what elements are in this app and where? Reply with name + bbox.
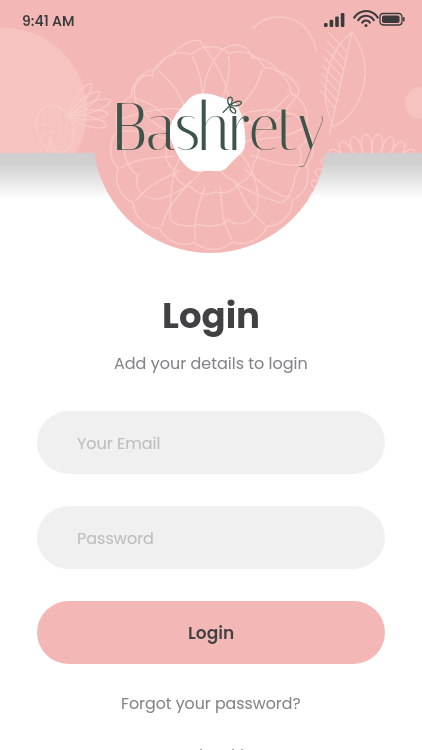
button[interactable]: Forgot your password? (113, 688, 309, 718)
staticText: Login With (173, 744, 250, 750)
button[interactable]: Login (37, 601, 385, 664)
staticText: Login (162, 291, 261, 341)
staticText: Your Email (77, 432, 161, 454)
other: Status icons (324, 10, 400, 28)
staticText: Login (188, 621, 235, 645)
staticText: Forgot your password? (121, 692, 301, 714)
button[interactable]: Password (37, 506, 385, 569)
staticText: Add your details to login (114, 352, 308, 374)
staticText: Password (77, 527, 154, 549)
staticText: Bashrety (113, 88, 325, 167)
staticText: 9:41 AM (22, 11, 75, 31)
button[interactable]: Your Email (37, 411, 385, 474)
